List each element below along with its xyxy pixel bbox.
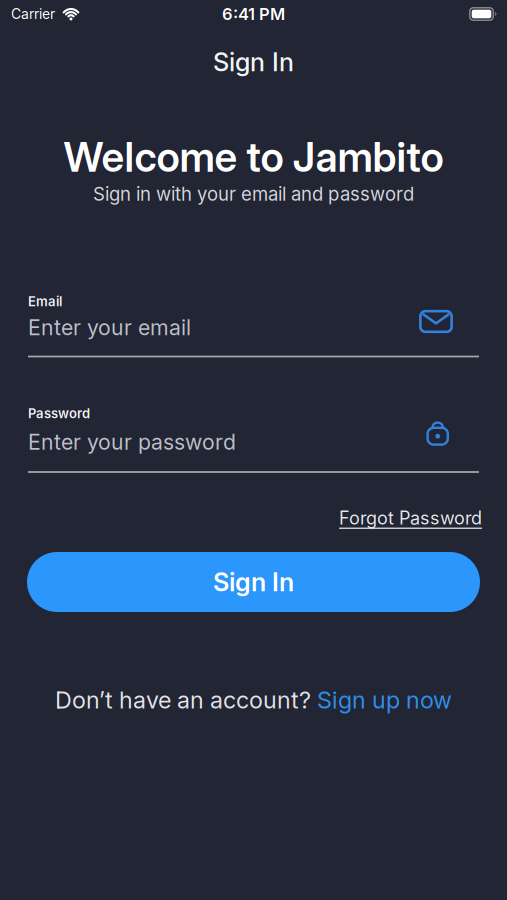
button[interactable]: Sign In: [27, 552, 480, 612]
staticText: Enter your password: [28, 429, 236, 455]
button[interactable]: Sign up now: [317, 686, 452, 714]
staticText: Sign In: [213, 47, 294, 77]
staticText: Sign in with your email and password: [93, 183, 414, 205]
staticText: Sign In: [213, 567, 294, 597]
staticText: 6:41 PM: [222, 4, 285, 24]
button[interactable]: Enter your password: [28, 400, 479, 480]
staticText: Don’t have an account?: [55, 686, 317, 714]
staticText: Email: [28, 294, 62, 309]
staticText: Carrier: [11, 5, 55, 22]
button[interactable]: Forgot Password: [339, 507, 482, 529]
staticText: Welcome to Jambito: [63, 132, 443, 182]
staticText: Forgot Password: [339, 507, 482, 529]
staticText: Password: [28, 406, 90, 421]
staticText: Sign up now: [317, 686, 452, 714]
staticText: Enter your email: [28, 315, 191, 340]
button[interactable]: Enter your email: [28, 295, 479, 375]
